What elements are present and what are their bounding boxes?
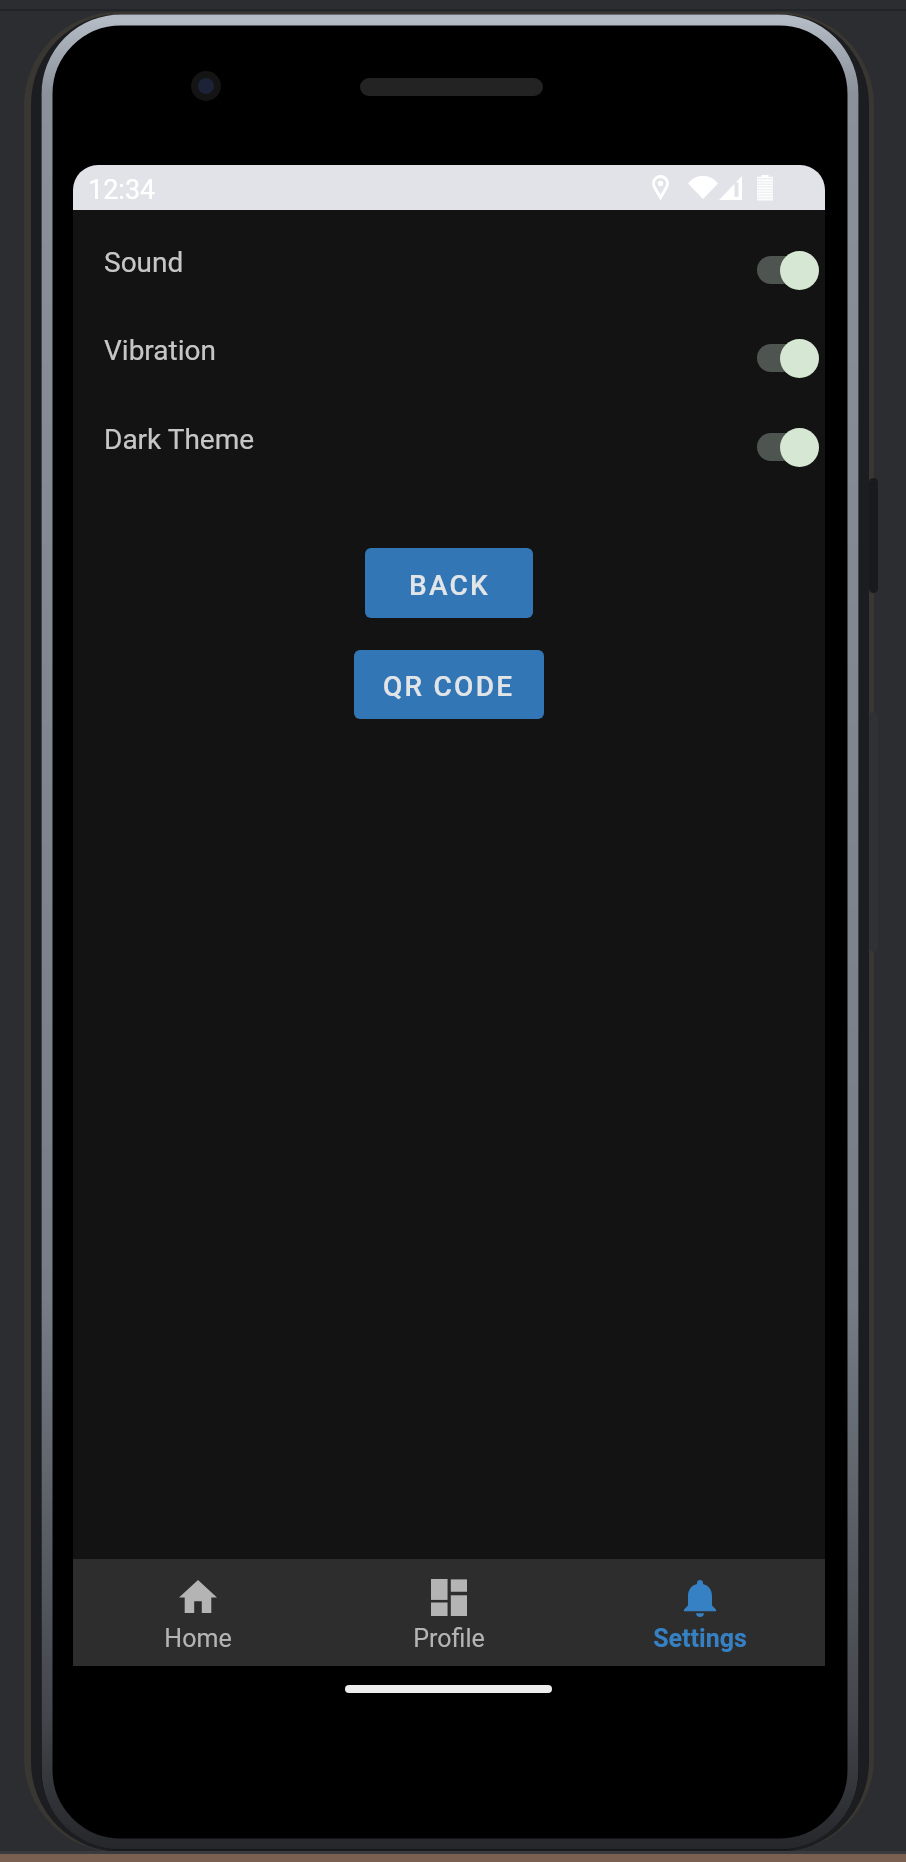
button[interactable]: Toggle $ [757,246,819,294]
button[interactable]: Sound [73,235,825,305]
button[interactable]: Profile [323,1559,574,1666]
button[interactable]: Vibration [73,323,825,393]
button[interactable]: QR CODE [354,650,544,719]
button[interactable]: Dark Theme [73,412,825,482]
staticText: Settings [653,1624,747,1653]
staticText: Dark Theme [104,423,255,456]
staticText: QR CODE [383,670,515,703]
staticText: Sound [104,246,184,279]
staticText: 12:34 [88,174,156,206]
button[interactable]: BACK [365,548,533,618]
staticText: BACK [409,569,490,602]
button[interactable]: Home [73,1559,323,1666]
button[interactable]: Toggle $ [757,334,819,382]
staticText: Vibration [104,334,216,367]
staticText: Home [164,1624,232,1653]
button[interactable]: Toggle $ [757,423,819,471]
button[interactable]: Settings [574,1559,825,1666]
staticText: Profile [413,1624,485,1653]
